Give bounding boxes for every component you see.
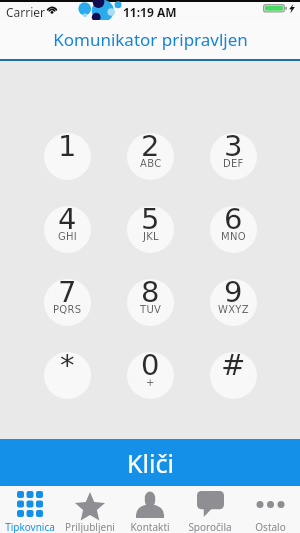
staticText: TUV [140,304,162,316]
staticText: 8 [141,279,160,309]
button[interactable]: # [210,352,257,399]
staticText: WXYZ [218,304,249,316]
button[interactable]: 8 [127,279,174,326]
staticText: Kliči [127,446,174,480]
staticText: JKL [143,231,159,243]
staticText: Komunikator pripravljen [53,28,248,51]
staticText: DEF [223,158,244,170]
staticText: 6 [224,206,243,236]
button[interactable]: 7 [44,279,91,326]
staticText: ABC [140,158,162,170]
staticText: Ostalo [255,520,286,533]
button[interactable]: Kontakti [120,486,180,533]
staticText: 5 [141,206,160,236]
staticText: Tipkovnica [5,520,55,533]
button[interactable]: 0 [127,352,174,399]
button[interactable]: 4 [44,206,91,253]
staticText: Priljubljeni [65,520,115,533]
staticText: Carrier [6,4,46,20]
button[interactable]: 3 [210,133,257,180]
button[interactable]: 5 [127,206,174,253]
staticText: + [146,377,155,389]
button[interactable]: Ostalo [240,486,300,533]
button[interactable]: Kliči [0,439,300,486]
button[interactable]: Priljubljeni [60,486,120,533]
staticText: 11:19 AM [123,4,177,20]
staticText: GHI [58,231,78,243]
button[interactable]: 1 [44,133,91,180]
staticText: 3 [224,133,243,163]
button[interactable]: 6 [210,206,257,253]
button[interactable]: * [44,352,91,399]
staticText: 1 [58,133,77,163]
button[interactable]: 2 [127,133,174,180]
button[interactable]: Sporočila [180,486,240,533]
staticText: 9 [224,279,243,309]
button[interactable]: Tipkovnica [0,486,60,533]
staticText: * [60,352,75,382]
staticText: PQRS [53,304,82,316]
staticText: 4 [58,206,77,236]
staticText: 0 [141,352,160,382]
staticText: # [221,352,246,382]
staticText: 2 [141,133,160,163]
button[interactable]: 9 [210,279,257,326]
staticText: 7 [58,279,77,309]
staticText: MNO [221,231,246,243]
staticText: Kontakti [130,520,170,533]
staticText: Sporočila [188,520,232,533]
